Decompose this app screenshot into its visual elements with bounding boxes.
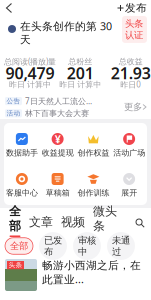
button[interactable]: 已发布 (39, 232, 67, 260)
button[interactable]: 总阅读(播放)量 (0, 57, 50, 89)
button[interactable]: 客服中心 (4, 164, 40, 204)
staticText: 畅游小西湖之后，在此置业... (42, 259, 141, 286)
button[interactable]: 头条认证 (122, 16, 147, 43)
staticText: 更多 (124, 101, 142, 113)
button[interactable]: 微头条 (89, 208, 121, 236)
button[interactable]: 公告 (0, 95, 151, 119)
button[interactable]: 发布 (113, 0, 151, 16)
button[interactable]: Back (0, 0, 18, 16)
staticText: ¥ (55, 132, 61, 146)
staticText: 全部 (9, 204, 21, 233)
button[interactable]: 全部 (5, 208, 25, 236)
button[interactable]: ¥ (40, 124, 76, 164)
staticText: 头条认证 (125, 18, 143, 41)
staticText: 创作训练 (77, 188, 109, 198)
button[interactable]: 头条 (0, 256, 151, 291)
staticText: 草稿箱 (46, 188, 70, 198)
staticText: 总阅读(播放)量 (4, 56, 56, 67)
button[interactable]: 数据助手 (4, 124, 40, 164)
staticText: 活动广场 (113, 148, 145, 158)
button[interactable]: 视频 (57, 208, 89, 236)
staticText: 创作权益 (77, 148, 109, 158)
staticText: 已发布 (44, 234, 62, 257)
staticText: 发布 (125, 1, 147, 14)
staticText: 展开 (121, 188, 137, 198)
button[interactable]: 文章 (25, 208, 57, 236)
staticText: 21.93 (111, 62, 151, 84)
staticText: 文章 (29, 215, 53, 229)
staticText: 昨日 计算中 (9, 80, 51, 89)
button[interactable]: 创作权益 (75, 124, 111, 164)
staticText: 昨日 计算中 (59, 80, 101, 89)
staticText: 视频 (61, 215, 85, 229)
staticText: 7日天然人工流公... (25, 96, 92, 106)
button[interactable]: 展开 (111, 164, 147, 204)
button[interactable]: 全部 (5, 238, 33, 254)
staticText: 林下百事大会大赛 (25, 108, 89, 118)
staticText: 在头条创作的第 30 天 (20, 19, 112, 46)
staticText: 审核中 (78, 234, 96, 257)
staticText: 数据助手 (6, 148, 38, 158)
button[interactable]: 总粉丝 (50, 57, 101, 89)
staticText: 昨日0 (120, 79, 141, 90)
staticText: 活动 (6, 109, 20, 117)
button[interactable]: 活动广场 (111, 124, 147, 164)
staticText: 收益提现 (42, 148, 74, 158)
button[interactable]: 总收益 (101, 57, 151, 89)
staticText: 全部 (10, 240, 28, 252)
staticText: 公告 (6, 97, 20, 105)
staticText: 微头条 (93, 204, 117, 233)
staticText: 客服中心 (6, 188, 38, 198)
staticText: 总收益 (119, 57, 143, 66)
staticText: 头条 (8, 261, 22, 269)
button[interactable]: 未通过 (107, 232, 135, 260)
button[interactable]: 搜索 (132, 210, 148, 236)
staticText: 201 (67, 62, 94, 84)
button[interactable]: 草稿箱 (40, 164, 76, 204)
staticText: 未通过 (112, 234, 130, 257)
button[interactable]: 审核中 (73, 232, 101, 260)
staticText: 总粉丝 (68, 57, 92, 66)
staticText: 90,479 (5, 62, 54, 84)
button[interactable]: 创作训练 (75, 164, 111, 204)
